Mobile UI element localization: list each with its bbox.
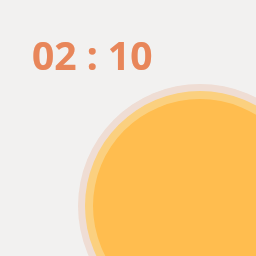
button[interactable]: 02 : 10: [32, 28, 196, 76]
staticText: 02 : 10: [32, 28, 153, 76]
button[interactable]: Timer progress: [0, 0, 256, 256]
